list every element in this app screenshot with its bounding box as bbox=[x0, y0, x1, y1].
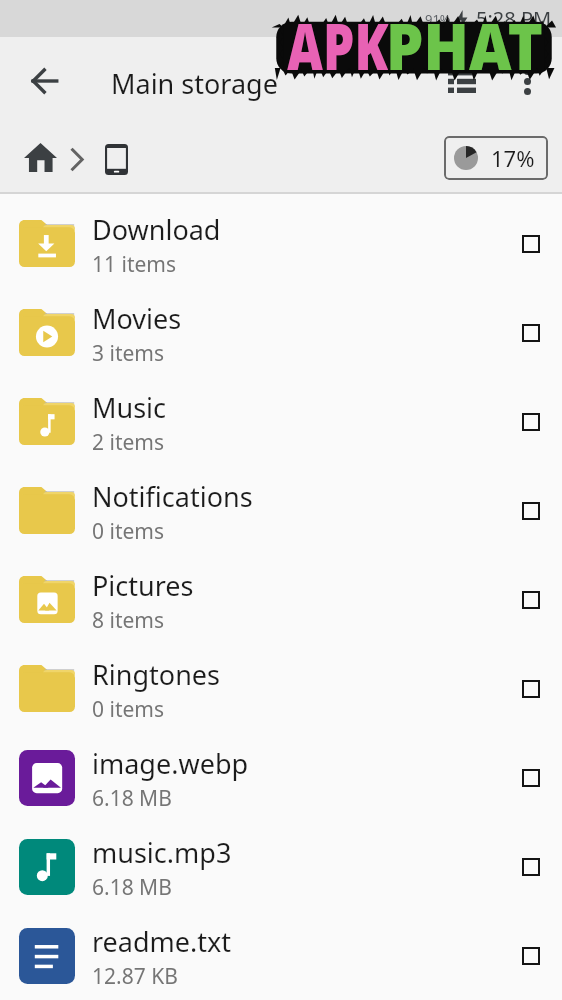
staticText: 5:28 PM bbox=[476, 5, 552, 32]
staticText: 0 items bbox=[92, 517, 165, 546]
button[interactable]: Movies bbox=[0, 283, 562, 372]
button[interactable]: Select Music bbox=[509, 400, 553, 444]
button[interactable]: Download bbox=[0, 194, 562, 283]
staticText: APK bbox=[287, 0, 388, 70]
staticText: 0 items bbox=[92, 695, 165, 724]
staticText: 12.87 KB bbox=[92, 962, 178, 991]
staticText: Pictures bbox=[92, 567, 194, 604]
button[interactable]: image.webp bbox=[0, 728, 562, 817]
button[interactable]: Select Download bbox=[509, 222, 553, 266]
staticText: Movies bbox=[92, 300, 182, 337]
staticText: readme.txt bbox=[92, 923, 232, 960]
staticText: 17% bbox=[491, 143, 535, 173]
button[interactable]: Select Ringtones bbox=[509, 667, 553, 711]
button[interactable]: Select Notifications bbox=[509, 489, 553, 533]
button[interactable]: Select Pictures bbox=[509, 578, 553, 622]
staticText: 2 items bbox=[92, 428, 165, 457]
button[interactable]: Notifications bbox=[0, 461, 562, 550]
staticText: Notifications bbox=[92, 478, 253, 515]
button[interactable]: Navigate up bbox=[20, 57, 68, 105]
button[interactable]: 17% bbox=[444, 136, 548, 180]
staticText: PHAT bbox=[386, 0, 543, 70]
staticText: 3 items bbox=[92, 339, 165, 368]
button[interactable]: music.mp3 bbox=[0, 817, 562, 906]
staticText: 6.18 MB bbox=[92, 873, 172, 902]
button[interactable]: Music bbox=[0, 372, 562, 461]
button[interactable]: Select readme.txt bbox=[509, 934, 553, 978]
staticText: Download bbox=[92, 211, 221, 248]
button[interactable]: More options bbox=[503, 57, 551, 105]
button[interactable]: Change view bbox=[438, 57, 486, 105]
staticText: Main storage bbox=[111, 65, 278, 102]
button[interactable]: Select image.webp bbox=[509, 756, 553, 800]
staticText: 91% bbox=[425, 10, 451, 28]
staticText: image.webp bbox=[92, 745, 249, 782]
button[interactable]: Pictures bbox=[0, 550, 562, 639]
button[interactable]: Select Movies bbox=[509, 311, 553, 355]
staticText: Music bbox=[92, 389, 167, 426]
staticText: 8 items bbox=[92, 606, 165, 635]
button[interactable]: Ringtones bbox=[0, 639, 562, 728]
button[interactable]: Home bbox=[16, 133, 64, 181]
button[interactable]: readme.txt bbox=[0, 906, 562, 995]
staticText: Ringtones bbox=[92, 656, 220, 693]
staticText: music.mp3 bbox=[92, 834, 232, 871]
staticText: 6.18 MB bbox=[92, 784, 172, 813]
staticText: 11 items bbox=[92, 250, 177, 279]
button[interactable]: Select music.mp3 bbox=[509, 845, 553, 889]
button[interactable]: Internal storage bbox=[92, 135, 140, 183]
